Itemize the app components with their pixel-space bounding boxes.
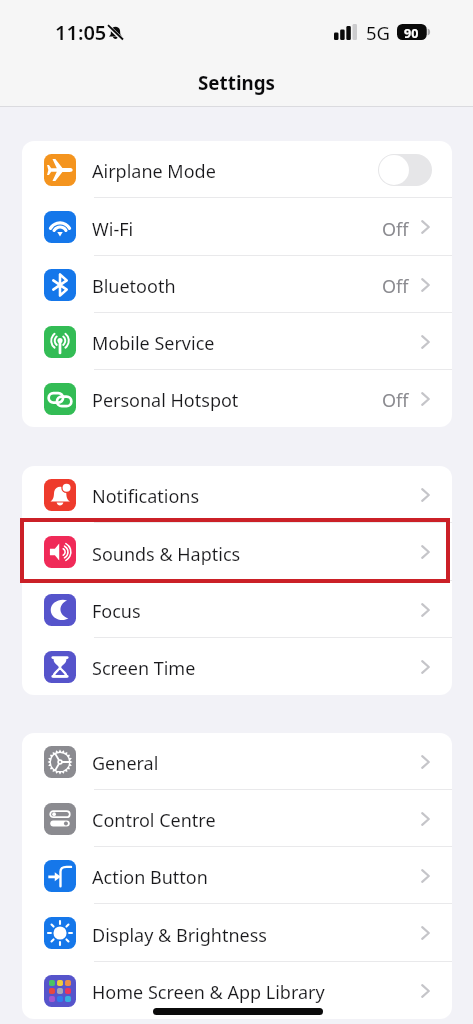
button[interactable]: Action Button [22, 847, 452, 904]
button[interactable]: Home Screen & App Library [22, 962, 452, 1019]
button[interactable]: Focus [22, 581, 452, 638]
staticText: Display & Brightness [92, 923, 421, 948]
staticText: Bluetooth [92, 274, 382, 299]
other: Silent mode [108, 24, 123, 40]
staticText: 11:05 [55, 19, 107, 46]
button[interactable]: Personal Hotspot [22, 370, 452, 427]
staticText: Personal Hotspot [92, 388, 382, 413]
button[interactable]: Control Centre [22, 790, 452, 847]
staticText: 5G [366, 20, 391, 45]
button[interactable]: Airplane Mode [22, 141, 452, 198]
staticText: Wi-Fi [92, 217, 382, 242]
staticText: Mobile Service [92, 331, 421, 356]
staticText: Home Screen & App Library [92, 980, 421, 1005]
button[interactable]: General [22, 733, 452, 790]
staticText: Airplane Mode [92, 159, 376, 184]
staticText: Screen Time [92, 656, 421, 681]
staticText: General [92, 751, 421, 776]
staticText: Sounds & Haptics [92, 542, 421, 567]
staticText: Notifications [92, 484, 421, 509]
button[interactable]: Airplane Mode toggle, off [378, 154, 432, 186]
button[interactable]: Sounds & Haptics [22, 523, 452, 581]
staticText: Action Button [92, 865, 421, 890]
staticText: Off [382, 388, 409, 413]
button[interactable]: Bluetooth [22, 256, 452, 313]
button[interactable]: Display & Brightness [22, 904, 452, 962]
staticText: Off [382, 274, 409, 299]
button[interactable]: Screen Time [22, 638, 452, 695]
staticText: Focus [92, 599, 421, 624]
button[interactable]: Wi-Fi [22, 198, 452, 256]
staticText: Settings [198, 70, 276, 96]
staticText: Off [382, 217, 409, 242]
staticText: 90 [404, 25, 419, 41]
staticText: Control Centre [92, 808, 421, 833]
button[interactable]: Mobile Service [22, 313, 452, 370]
button[interactable]: Notifications [22, 466, 452, 523]
